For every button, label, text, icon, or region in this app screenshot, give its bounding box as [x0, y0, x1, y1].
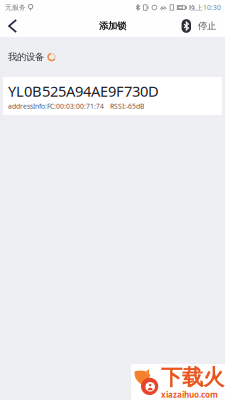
button[interactable]: YL0B525A94AE9F730D [3, 77, 222, 115]
staticText: 下载火 [161, 364, 224, 390]
staticText: addressInfo:FC:00:03:00:71:74 RSSI:-65dB [8, 102, 144, 111]
staticText: 添加锁 [99, 20, 126, 32]
staticText: YL0B525A94AE9F730D [8, 81, 159, 101]
staticText: 停止 [198, 20, 216, 32]
staticText: 晚上10:30 [187, 3, 221, 12]
button[interactable]: Back [0, 15, 27, 37]
staticText: 无服务 [5, 3, 26, 12]
button[interactable]: 停止 [176, 15, 225, 37]
staticText: xiazaihuo.com [161, 389, 218, 400]
staticText: 我的设备 [8, 51, 44, 63]
